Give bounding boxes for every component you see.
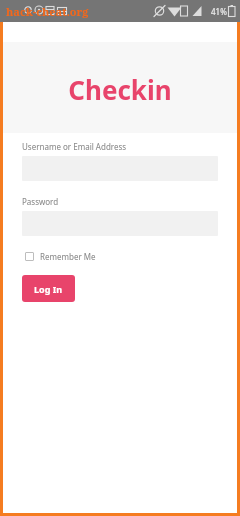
- button[interactable]: Log In: [22, 275, 75, 302]
- staticText: Log In: [34, 283, 63, 295]
- staticText: Remember Me: [40, 251, 96, 262]
- staticText: Password: [22, 196, 59, 207]
- staticText: 41%: [211, 6, 227, 17]
- staticText: Checkin: [68, 72, 172, 107]
- staticText: hack-cheat.org: [6, 4, 89, 19]
- staticText: Username or Email Address: [22, 141, 127, 152]
- button[interactable]: Remember Me: [25, 251, 96, 262]
